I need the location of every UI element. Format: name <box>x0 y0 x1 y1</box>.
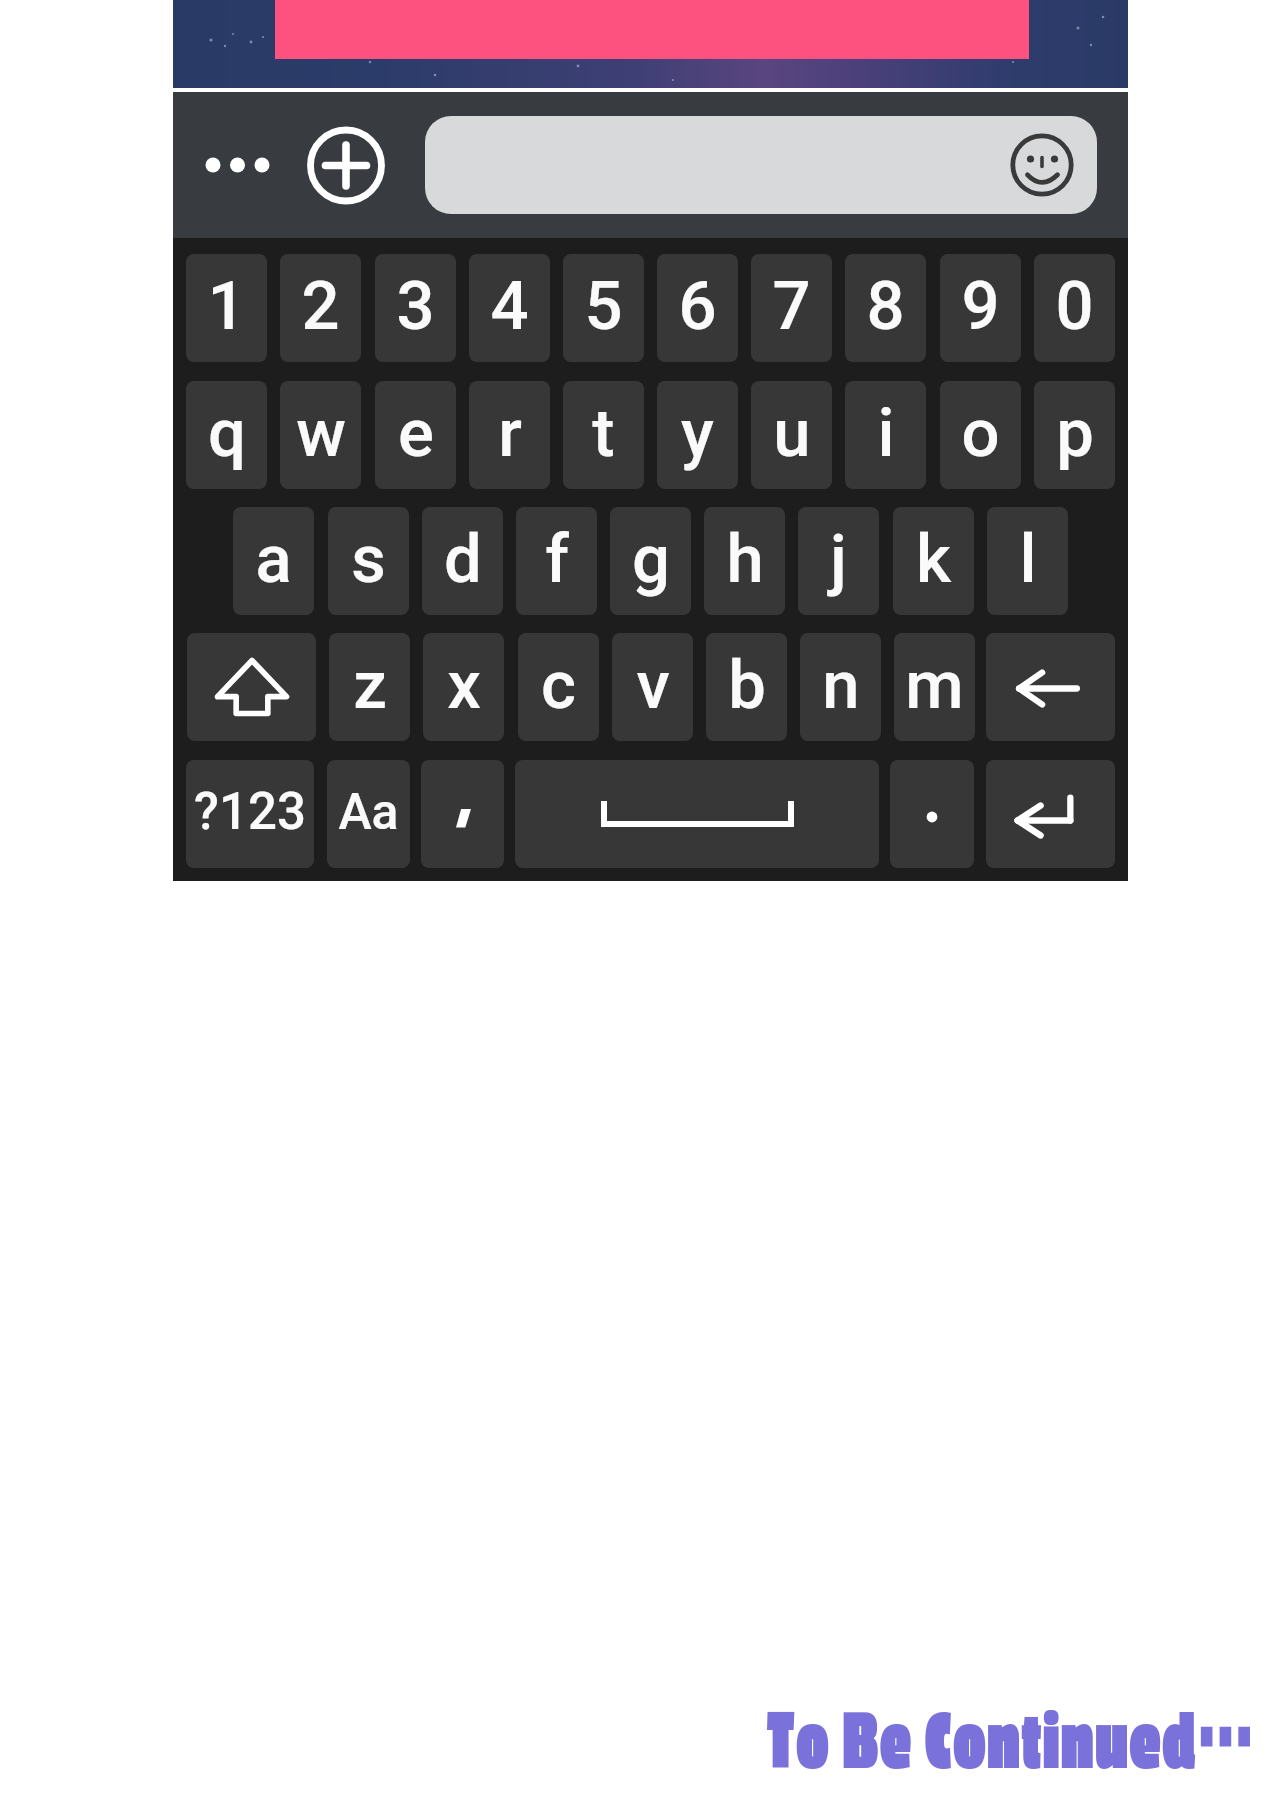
button[interactable]: 7 <box>751 254 832 362</box>
staticText: ?123 <box>194 782 306 842</box>
staticText: z <box>353 646 387 725</box>
staticText: i <box>877 394 895 473</box>
staticText: r <box>498 394 522 473</box>
staticText: v <box>636 646 670 725</box>
staticText: n <box>822 646 860 725</box>
button[interactable]: i <box>845 381 926 489</box>
staticText: 2 <box>301 267 340 346</box>
button[interactable]: p <box>1034 381 1115 489</box>
staticText: o <box>961 394 1000 473</box>
staticText: 5 <box>584 267 623 346</box>
button[interactable]: Comma <box>421 760 504 868</box>
staticText: c <box>541 646 576 725</box>
button[interactable]: 0 <box>1034 254 1115 362</box>
staticText: 8 <box>866 267 905 346</box>
button[interactable]: 4 <box>469 254 550 362</box>
button[interactable] <box>425 116 1097 214</box>
staticText: w <box>296 394 346 473</box>
button[interactable]: 8 <box>845 254 926 362</box>
button[interactable]: Backspace <box>986 633 1115 741</box>
staticText: a <box>255 520 292 599</box>
button[interactable]: 2 <box>280 254 361 362</box>
staticText: 6 <box>678 267 717 346</box>
staticText: y <box>681 394 714 473</box>
staticText: t <box>592 394 615 473</box>
button[interactable]: o <box>940 381 1021 489</box>
button[interactable]: h <box>704 507 785 615</box>
button[interactable]: Aa <box>327 760 410 868</box>
staticText: b <box>728 646 766 725</box>
staticText: h <box>726 520 764 599</box>
staticText: 7 <box>772 267 811 346</box>
staticText: d <box>444 520 482 599</box>
button[interactable]: 9 <box>940 254 1021 362</box>
button[interactable]: ?123 <box>186 760 314 868</box>
button[interactable]: f <box>516 507 597 615</box>
button[interactable]: e <box>375 381 456 489</box>
staticText: 0 <box>1055 267 1094 346</box>
staticText: q <box>208 394 246 473</box>
staticText: 3 <box>396 267 435 346</box>
button[interactable]: Enter <box>986 760 1115 868</box>
button[interactable]: k <box>893 507 974 615</box>
staticText: f <box>545 520 569 599</box>
staticText: Aa <box>338 783 399 842</box>
staticText: e <box>398 394 434 473</box>
button[interactable]: s <box>328 507 409 615</box>
button[interactable]: w <box>280 381 361 489</box>
button[interactable]: n <box>800 633 881 741</box>
staticText: x <box>447 646 481 725</box>
button[interactable]: Add attachment <box>300 120 390 210</box>
button[interactable]: b <box>706 633 787 741</box>
button[interactable]: j <box>798 507 879 615</box>
button[interactable]: q <box>186 381 267 489</box>
button[interactable]: c <box>518 633 599 741</box>
staticText: u <box>773 394 811 473</box>
button[interactable]: u <box>751 381 832 489</box>
staticText: g <box>632 520 670 599</box>
staticText: 9 <box>961 267 1000 346</box>
staticText: l <box>1019 520 1037 599</box>
staticText: j <box>830 520 847 599</box>
staticText: 1 <box>207 267 246 346</box>
button[interactable]: Space <box>515 760 879 868</box>
button[interactable]: Period <box>890 760 974 868</box>
button[interactable]: y <box>657 381 738 489</box>
staticText: m <box>905 646 964 725</box>
button[interactable]: 6 <box>657 254 738 362</box>
staticText: 4 <box>490 267 529 346</box>
button[interactable]: g <box>610 507 691 615</box>
button[interactable]: 3 <box>375 254 456 362</box>
staticText: s <box>351 520 386 599</box>
button[interactable]: x <box>423 633 504 741</box>
button[interactable]: More options <box>186 125 270 205</box>
button[interactable]: 1 <box>186 254 267 362</box>
button[interactable]: Shift <box>187 633 316 741</box>
button[interactable]: 5 <box>563 254 644 362</box>
staticText: k <box>916 520 951 599</box>
button[interactable]: r <box>469 381 550 489</box>
button[interactable]: z <box>329 633 410 741</box>
button[interactable]: m <box>894 633 975 741</box>
button[interactable]: d <box>422 507 503 615</box>
staticText: p <box>1056 394 1094 473</box>
staticText: To Be Continued⋯ <box>767 1684 1256 1791</box>
button[interactable]: v <box>612 633 693 741</box>
button[interactable]: l <box>987 507 1068 615</box>
button[interactable]: a <box>233 507 314 615</box>
button[interactable]: t <box>563 381 644 489</box>
